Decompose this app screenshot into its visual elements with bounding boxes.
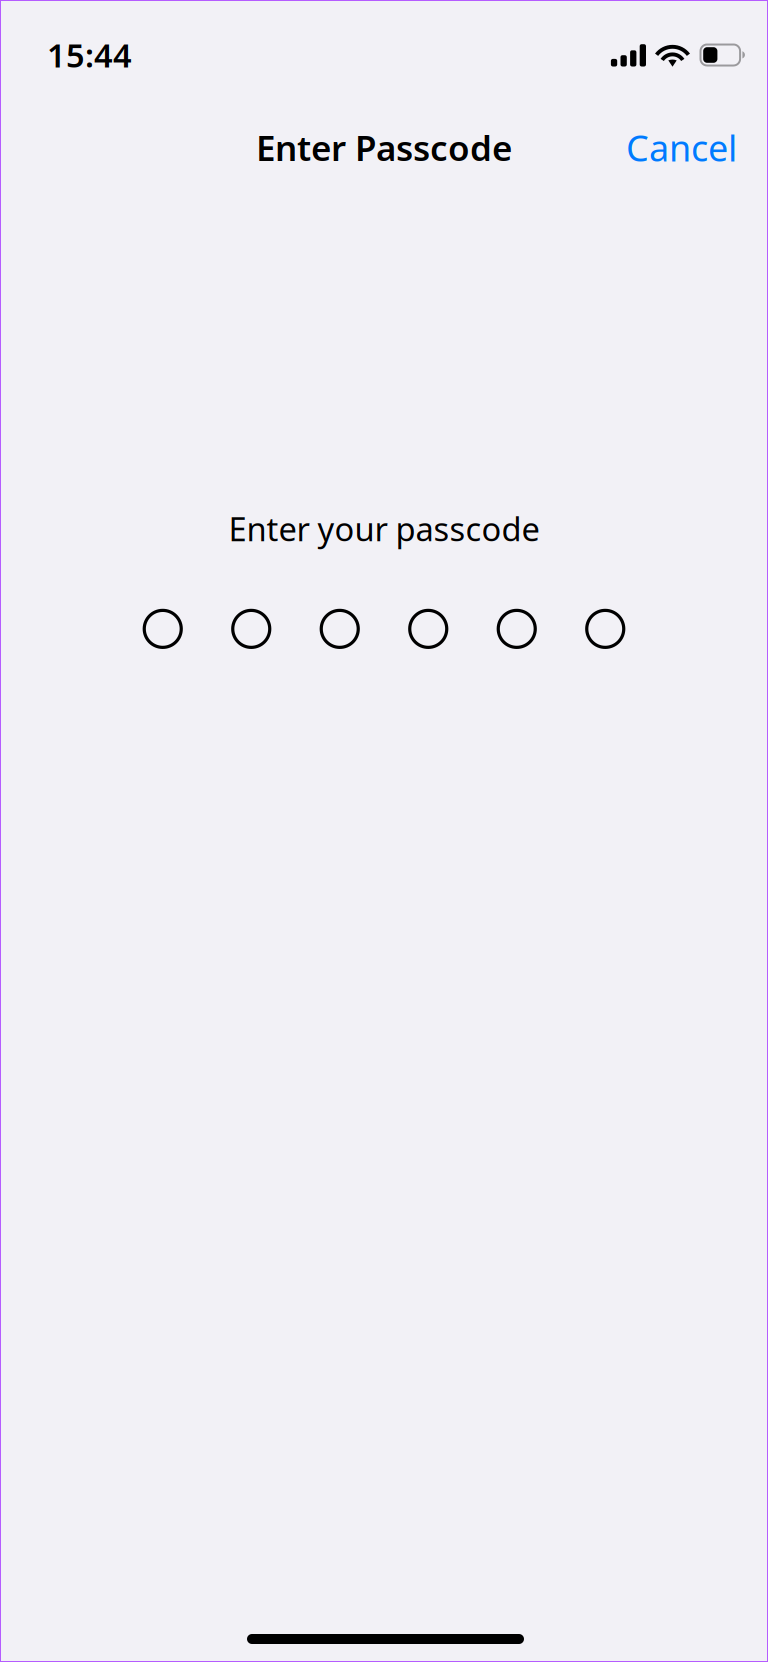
staticText: 15:44	[47, 33, 132, 77]
staticText: Enter Passcode	[256, 124, 512, 171]
staticText: Cancel	[626, 124, 737, 171]
staticText: Enter your passcode	[228, 507, 539, 550]
button[interactable]: Cancel	[609, 104, 754, 191]
